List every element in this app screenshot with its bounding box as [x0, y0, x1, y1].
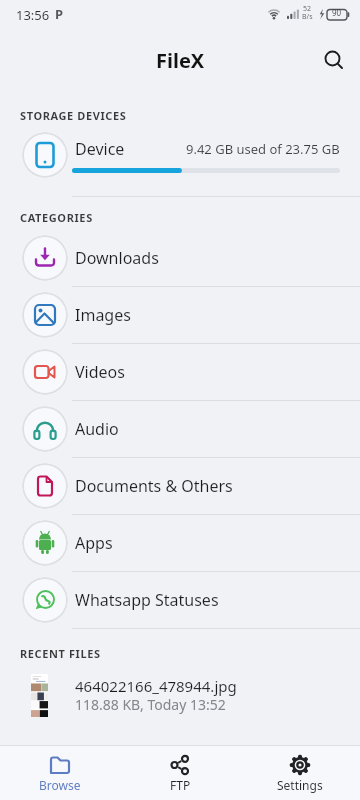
staticText: 52 — [303, 4, 312, 14]
staticText: Whatsapp Statuses — [75, 589, 219, 611]
staticText: Device — [75, 138, 125, 160]
staticText: 464022166_478944.jpg — [75, 676, 237, 696]
button[interactable]: Documents & Others — [0, 457, 360, 514]
staticText: 13:56 — [16, 6, 50, 24]
staticText: 118.88 KB, Today 13:52 — [75, 695, 226, 714]
staticText: Apps — [75, 532, 113, 554]
button[interactable]: Videos — [0, 343, 360, 400]
button[interactable]: Downloads — [0, 229, 360, 286]
button[interactable]: Whatsapp Statuses — [0, 571, 360, 628]
staticText: B/s — [302, 12, 313, 22]
staticText: Documents & Others — [75, 475, 233, 497]
staticText: Audio — [75, 418, 119, 440]
staticText: CATEGORIES — [20, 210, 93, 225]
button[interactable] — [314, 40, 354, 80]
staticText: FileX — [156, 47, 205, 74]
staticText: Images — [75, 304, 131, 326]
staticText: STORAGE DEVICES — [20, 108, 127, 123]
staticText: 90 — [332, 7, 342, 18]
staticText: Downloads — [75, 247, 159, 269]
button[interactable]: FTP — [120, 745, 240, 800]
button[interactable]: Images — [0, 286, 360, 343]
staticText: P — [55, 5, 64, 23]
button[interactable]: Audio — [0, 400, 360, 457]
button[interactable]: Apps — [0, 514, 360, 571]
staticText: Settings — [277, 777, 323, 793]
button[interactable]: Settings — [240, 745, 360, 800]
staticText: RECENT FILES — [20, 646, 101, 661]
staticText: Browse — [39, 777, 81, 793]
staticText: FTP — [170, 777, 191, 793]
staticText: 9.42 GB used of 23.75 GB — [186, 140, 340, 158]
button[interactable]: Device — [0, 126, 360, 196]
staticText: Videos — [75, 361, 125, 383]
button[interactable]: Browse — [0, 745, 120, 800]
button[interactable]: 464022166_478944.jpg — [0, 668, 360, 724]
